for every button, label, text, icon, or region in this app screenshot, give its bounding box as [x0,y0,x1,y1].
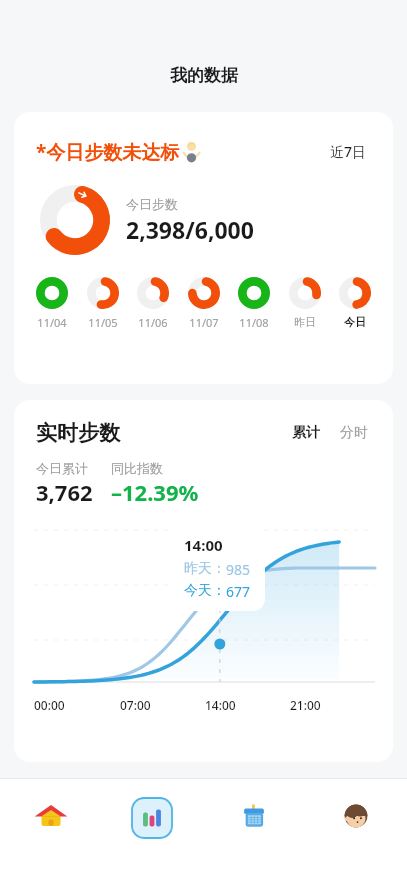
button[interactable]: 11/07 [182,277,226,330]
staticText: 07:00 [120,697,151,713]
staticText: 3,762 [36,477,93,507]
button[interactable]: 11/08 [232,277,276,330]
button[interactable]: 今日 [333,277,377,329]
button[interactable]: 11/05 [81,277,125,330]
button[interactable]: 累计 [289,420,323,446]
button[interactable]: 昨日 [283,277,327,329]
staticText: 11/07 [189,315,219,330]
staticText: 同比指数 [111,460,163,476]
staticText: 昨日 [294,315,316,329]
staticText: 累计 [292,424,320,442]
staticText: 11/06 [138,315,168,330]
staticText: 近7日 [330,142,367,161]
staticText: 今日步数 [126,196,178,212]
button[interactable]: 11/04 [30,277,74,330]
staticText: 14:00 [205,697,236,713]
staticText: 11/05 [88,315,118,330]
button[interactable]: Profile [305,779,407,883]
staticText: 677 [226,582,251,601]
staticText: 今日累计 [36,460,88,476]
button[interactable]: Tools [203,779,305,883]
button[interactable]: Home [0,779,101,883]
staticText: 昨天： [184,560,226,578]
button[interactable]: 11/06 [131,277,175,330]
staticText: 14:00 [184,535,223,555]
staticText: 我的数据 [170,65,238,86]
staticText: 实时步数 [36,420,120,446]
staticText: 今天： [184,582,226,600]
staticText: 今日 [344,315,366,329]
staticText: 985 [226,560,251,579]
staticText: 分时 [340,424,368,442]
staticText: 21:00 [290,697,321,713]
button[interactable]: 近7日 [326,138,371,165]
staticText: *今日步数未达标 [36,139,180,165]
button[interactable]: Data [101,779,203,883]
staticText: 11/04 [37,315,67,330]
button[interactable]: *今日步数未达标 [14,112,393,384]
staticText: 11/08 [239,315,269,330]
button[interactable]: 分时 [337,420,371,446]
button[interactable]: 实时步数 [14,400,393,762]
staticText: –12.39% [111,477,199,507]
staticText: 00:00 [34,697,65,713]
staticText: 2,398/6,000 [126,214,254,245]
